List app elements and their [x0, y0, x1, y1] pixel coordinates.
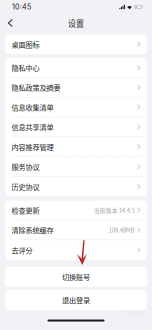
button[interactable]: 信息共享清单 [5, 117, 147, 137]
staticText: 历史协议 [11, 181, 39, 192]
button[interactable]: 桌面图标 [5, 34, 147, 54]
staticText: 内容推荐管理 [11, 141, 53, 152]
staticText: 退出登录 [62, 295, 90, 305]
staticText: 10:45 [12, 3, 31, 11]
button[interactable]: 隐私政策及摘要 [5, 78, 147, 97]
staticText: 桌面图标 [11, 39, 39, 50]
staticText: 隐私政策及摘要 [11, 82, 60, 92]
button[interactable]: 服务协议 [5, 157, 147, 177]
button[interactable]: 退出登录 [5, 290, 147, 310]
button[interactable]: 去评分 [5, 240, 147, 260]
staticText: 清除系统缓存 [11, 225, 53, 235]
staticText: 信息收集清单 [11, 102, 53, 112]
staticText: 信息共享清单 [11, 122, 53, 132]
button[interactable]: 内容推荐管理 [5, 137, 147, 157]
button[interactable]: Back [0, 14, 19, 32]
button[interactable]: 历史协议 [5, 177, 147, 196]
staticText: 切换账号 [62, 272, 90, 282]
button[interactable]: 检查更新 [5, 200, 147, 220]
button[interactable]: 清除系统缓存 [5, 220, 147, 240]
staticText: 隐私中心 [11, 62, 39, 73]
button[interactable]: 信息收集清单 [5, 97, 147, 117]
button[interactable]: 隐私中心 [5, 58, 147, 78]
staticText: 小米社区 [122, 308, 146, 317]
button[interactable]: 切换账号 [5, 267, 147, 287]
staticText: 当前版本 14.4.5 [94, 206, 135, 214]
staticText: 检查更新 [11, 205, 39, 215]
staticText: 108.48MB [109, 226, 135, 234]
staticText: 设置 [68, 17, 84, 29]
staticText: 去评分 [11, 245, 32, 255]
staticText: 服务协议 [11, 161, 39, 172]
